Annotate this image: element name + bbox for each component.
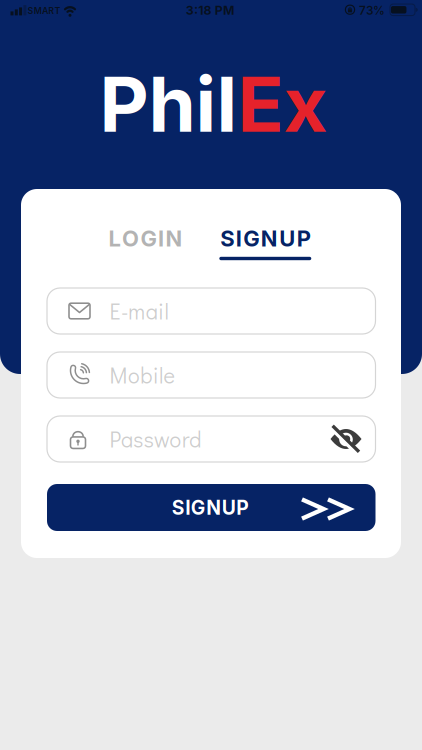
staticText: SIGNUP <box>172 496 249 519</box>
staticText: 3:18 PM <box>186 3 234 18</box>
staticText: SMART <box>28 5 60 16</box>
staticText: Password <box>109 425 201 453</box>
staticText: LOGIN <box>108 225 182 252</box>
staticText: E-mail <box>109 297 168 325</box>
staticText: Ex <box>237 58 327 150</box>
staticText: Phil <box>99 58 237 150</box>
staticText: SIGNUP <box>220 225 311 252</box>
staticText: 73% <box>359 3 385 18</box>
staticText: Mobile <box>109 361 174 389</box>
